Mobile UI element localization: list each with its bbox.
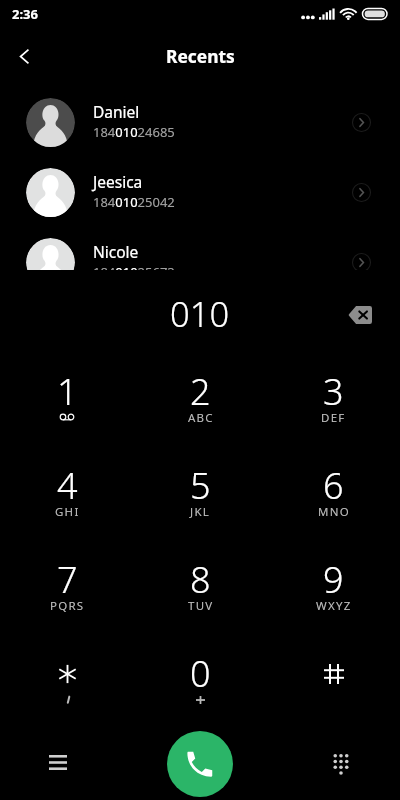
staticText: ABC: [188, 410, 214, 426]
button[interactable]: Dialpad: [321, 742, 361, 782]
button[interactable]: 9: [267, 533, 400, 627]
button[interactable]: Pound: [267, 627, 400, 721]
staticText: 0: [190, 649, 211, 698]
staticText: 8: [190, 555, 211, 604]
button[interactable]: 3: [267, 345, 400, 439]
button[interactable]: Call details: [346, 247, 376, 270]
staticText: PQRS: [50, 598, 85, 614]
staticText: 18401025673: [93, 263, 175, 270]
staticText: 9: [323, 555, 344, 604]
button[interactable]: Star: [0, 627, 134, 721]
button[interactable]: Backspace: [341, 296, 379, 334]
staticText: MNO: [318, 504, 350, 520]
staticText: Nicole: [93, 241, 139, 262]
button[interactable]: 6: [267, 439, 400, 533]
staticText: 4: [57, 461, 78, 510]
button[interactable]: Call details: [346, 177, 376, 207]
staticText: 3: [323, 367, 344, 416]
button[interactable]: 5: [134, 439, 267, 533]
button[interactable]: Jeesica: [0, 157, 400, 227]
staticText: 2: [190, 367, 211, 416]
button[interactable]: Nicole: [0, 227, 400, 270]
button[interactable]: 2: [134, 345, 267, 439]
button[interactable]: Call: [167, 731, 233, 797]
button[interactable]: Call log: [38, 742, 78, 782]
staticText: 010: [170, 290, 230, 337]
staticText: WXYZ: [316, 598, 352, 614]
staticText: 5: [190, 461, 211, 510]
staticText: Daniel: [93, 101, 140, 122]
button[interactable]: 0: [134, 627, 267, 721]
staticText: 6: [323, 461, 344, 510]
staticText: GHI: [55, 504, 80, 520]
button[interactable]: 7: [0, 533, 134, 627]
staticText: 18401024685: [93, 123, 175, 141]
staticText: DEF: [321, 410, 346, 426]
button[interactable]: Back: [2, 34, 46, 78]
staticText: 2:36: [12, 5, 38, 23]
staticText: Recents: [166, 44, 235, 68]
staticText: 1: [57, 367, 78, 416]
staticText: TUV: [188, 598, 214, 614]
staticText: JKL: [190, 504, 211, 520]
button[interactable]: Call details: [346, 107, 376, 137]
button[interactable]: 1: [0, 345, 134, 439]
button[interactable]: 8: [134, 533, 267, 627]
staticText: 7: [57, 555, 78, 604]
staticText: Jeesica: [93, 171, 143, 192]
button[interactable]: 4: [0, 439, 134, 533]
staticText: 18401025042: [93, 193, 175, 211]
button[interactable]: Daniel: [0, 87, 400, 157]
